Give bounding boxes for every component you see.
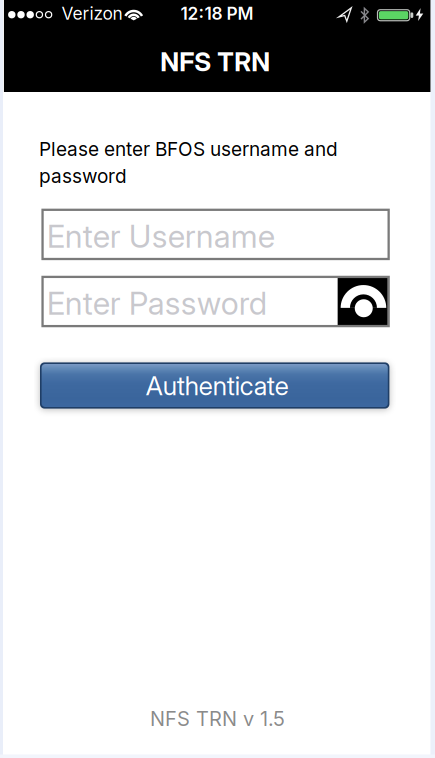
button[interactable]: Show Password [338,278,388,325]
button[interactable]: Enter Password [41,276,390,327]
staticText: Verizon [61,3,122,24]
button[interactable]: Enter Username [41,209,390,260]
staticText: Authenticate [146,370,289,402]
staticText: Enter Username [47,217,275,255]
staticText: NFS TRN v 1.5 [150,707,285,731]
button[interactable]: Authenticate [40,362,389,409]
staticText: password [39,165,127,188]
staticText: NFS TRN [160,46,270,78]
staticText: Please enter BFOS username and [39,138,338,161]
staticText: 12:18 PM [180,3,253,24]
staticText: Enter Password [47,284,267,322]
